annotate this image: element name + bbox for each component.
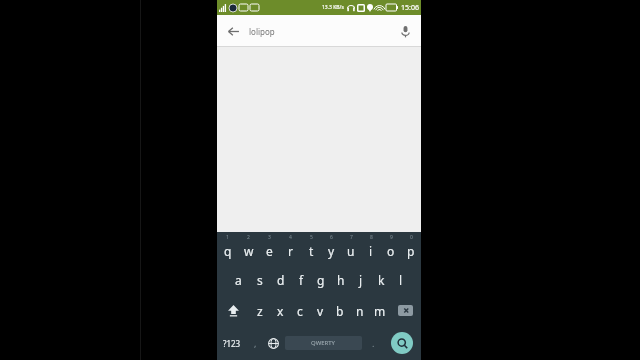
staticText: p — [407, 243, 415, 259]
staticText: 2 — [247, 234, 250, 241]
button[interactable]: 8 — [361, 232, 381, 264]
staticText: 9 — [390, 234, 393, 241]
staticText: i — [369, 243, 373, 259]
staticText: d — [277, 272, 285, 288]
staticText: t — [309, 243, 314, 259]
button[interactable]: k — [371, 264, 391, 295]
staticText: x — [277, 303, 284, 319]
staticText: 1 — [226, 234, 229, 241]
staticText: y — [328, 243, 335, 259]
staticText: f — [299, 272, 304, 288]
staticText: . — [372, 337, 375, 349]
button[interactable]: c — [290, 295, 310, 326]
staticText: h — [337, 272, 345, 288]
staticText: v — [317, 303, 324, 319]
button[interactable]: QWERTY — [285, 336, 362, 350]
button[interactable]: 5 — [301, 232, 321, 264]
button[interactable]: x — [270, 295, 290, 326]
staticText: 4 — [289, 234, 292, 241]
button[interactable]: ?123 — [217, 326, 246, 360]
staticText: k — [378, 272, 385, 288]
button[interactable]: h — [331, 264, 351, 295]
button[interactable]: Shift — [217, 295, 249, 326]
staticText: 5 — [310, 234, 313, 241]
button[interactable]: m — [370, 295, 390, 326]
button[interactable]: f — [291, 264, 311, 295]
staticText: 6 — [330, 234, 333, 241]
button[interactable]: z — [249, 295, 270, 326]
staticText: QWERTY — [311, 339, 336, 347]
button[interactable]: 2 — [238, 232, 259, 264]
button[interactable]: 6 — [321, 232, 341, 264]
button[interactable]: g — [311, 264, 331, 295]
staticText: r — [288, 243, 293, 259]
staticText: , — [254, 337, 257, 349]
staticText: q — [224, 243, 232, 259]
button[interactable]: b — [330, 295, 350, 326]
staticText: a — [235, 272, 242, 288]
button[interactable]: Change language — [264, 326, 283, 360]
staticText: o — [387, 243, 395, 259]
staticText: z — [257, 303, 263, 319]
button[interactable]: Backspace — [390, 295, 421, 326]
button[interactable]: n — [350, 295, 370, 326]
button[interactable]: v — [310, 295, 330, 326]
staticText: g — [317, 272, 325, 288]
staticText: j — [359, 272, 363, 288]
staticText: e — [266, 243, 273, 259]
staticText: 7 — [350, 234, 353, 241]
staticText: 8 — [370, 234, 373, 241]
staticText: c — [297, 303, 303, 319]
staticText: l — [399, 272, 403, 288]
button[interactable]: 3 — [259, 232, 280, 264]
button[interactable]: Back — [217, 15, 249, 47]
button[interactable]: 7 — [341, 232, 361, 264]
staticText: n — [356, 303, 364, 319]
button[interactable]: s — [249, 264, 270, 295]
staticText: 0 — [410, 234, 413, 241]
button[interactable]: 0 — [401, 232, 421, 264]
staticText: u — [347, 243, 355, 259]
staticText: 13.3 KB/s — [322, 4, 344, 11]
button[interactable]: Voice search — [389, 15, 421, 47]
button[interactable]: d — [270, 264, 291, 295]
staticText: w — [244, 243, 254, 259]
staticText: lolipop — [249, 26, 389, 37]
staticText: b — [336, 303, 344, 319]
staticText: m — [374, 303, 386, 319]
button[interactable]: , — [246, 326, 264, 360]
button[interactable]: a — [228, 264, 249, 295]
button[interactable]: 9 — [381, 232, 401, 264]
button[interactable]: 1 — [217, 232, 238, 264]
staticText: 15:06 — [401, 3, 419, 13]
staticText: ?123 — [223, 338, 241, 349]
button[interactable]: 4 — [280, 232, 301, 264]
button[interactable]: Search — [382, 326, 421, 360]
staticText: s — [257, 272, 263, 288]
button[interactable]: j — [351, 264, 371, 295]
staticText: 3 — [268, 234, 271, 241]
button[interactable]: l — [391, 264, 411, 295]
